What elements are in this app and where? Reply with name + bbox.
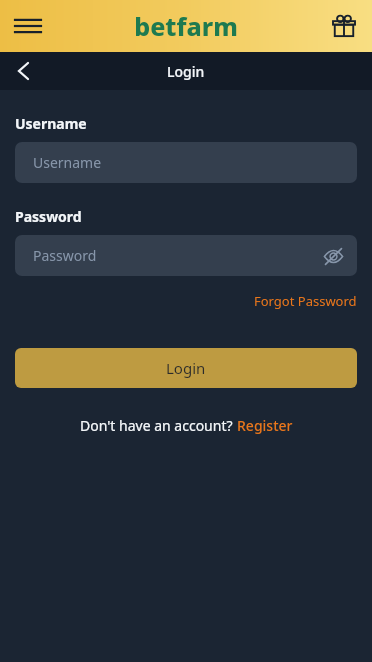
button[interactable]: Promotions bbox=[324, 6, 364, 46]
staticText: Login bbox=[166, 358, 206, 378]
button[interactable]: Login bbox=[15, 348, 357, 388]
button[interactable]: Back bbox=[6, 54, 40, 88]
staticText: Password bbox=[15, 207, 82, 226]
staticText: Forgot Password bbox=[254, 292, 357, 310]
button[interactable]: Username bbox=[15, 142, 357, 183]
staticText: Username bbox=[33, 153, 102, 172]
staticText: Password bbox=[33, 246, 97, 265]
staticText: Username bbox=[15, 114, 87, 133]
staticText: Register bbox=[237, 416, 293, 435]
button[interactable]: Password bbox=[15, 235, 357, 276]
button[interactable]: Show password bbox=[317, 240, 349, 272]
button[interactable]: Register bbox=[237, 416, 293, 435]
staticText: betfarm bbox=[134, 9, 238, 43]
button[interactable]: Forgot Password bbox=[239, 288, 372, 314]
staticText: Login bbox=[167, 62, 205, 81]
staticText: Don't have an account? bbox=[80, 416, 237, 435]
button[interactable]: Menu bbox=[8, 6, 48, 46]
